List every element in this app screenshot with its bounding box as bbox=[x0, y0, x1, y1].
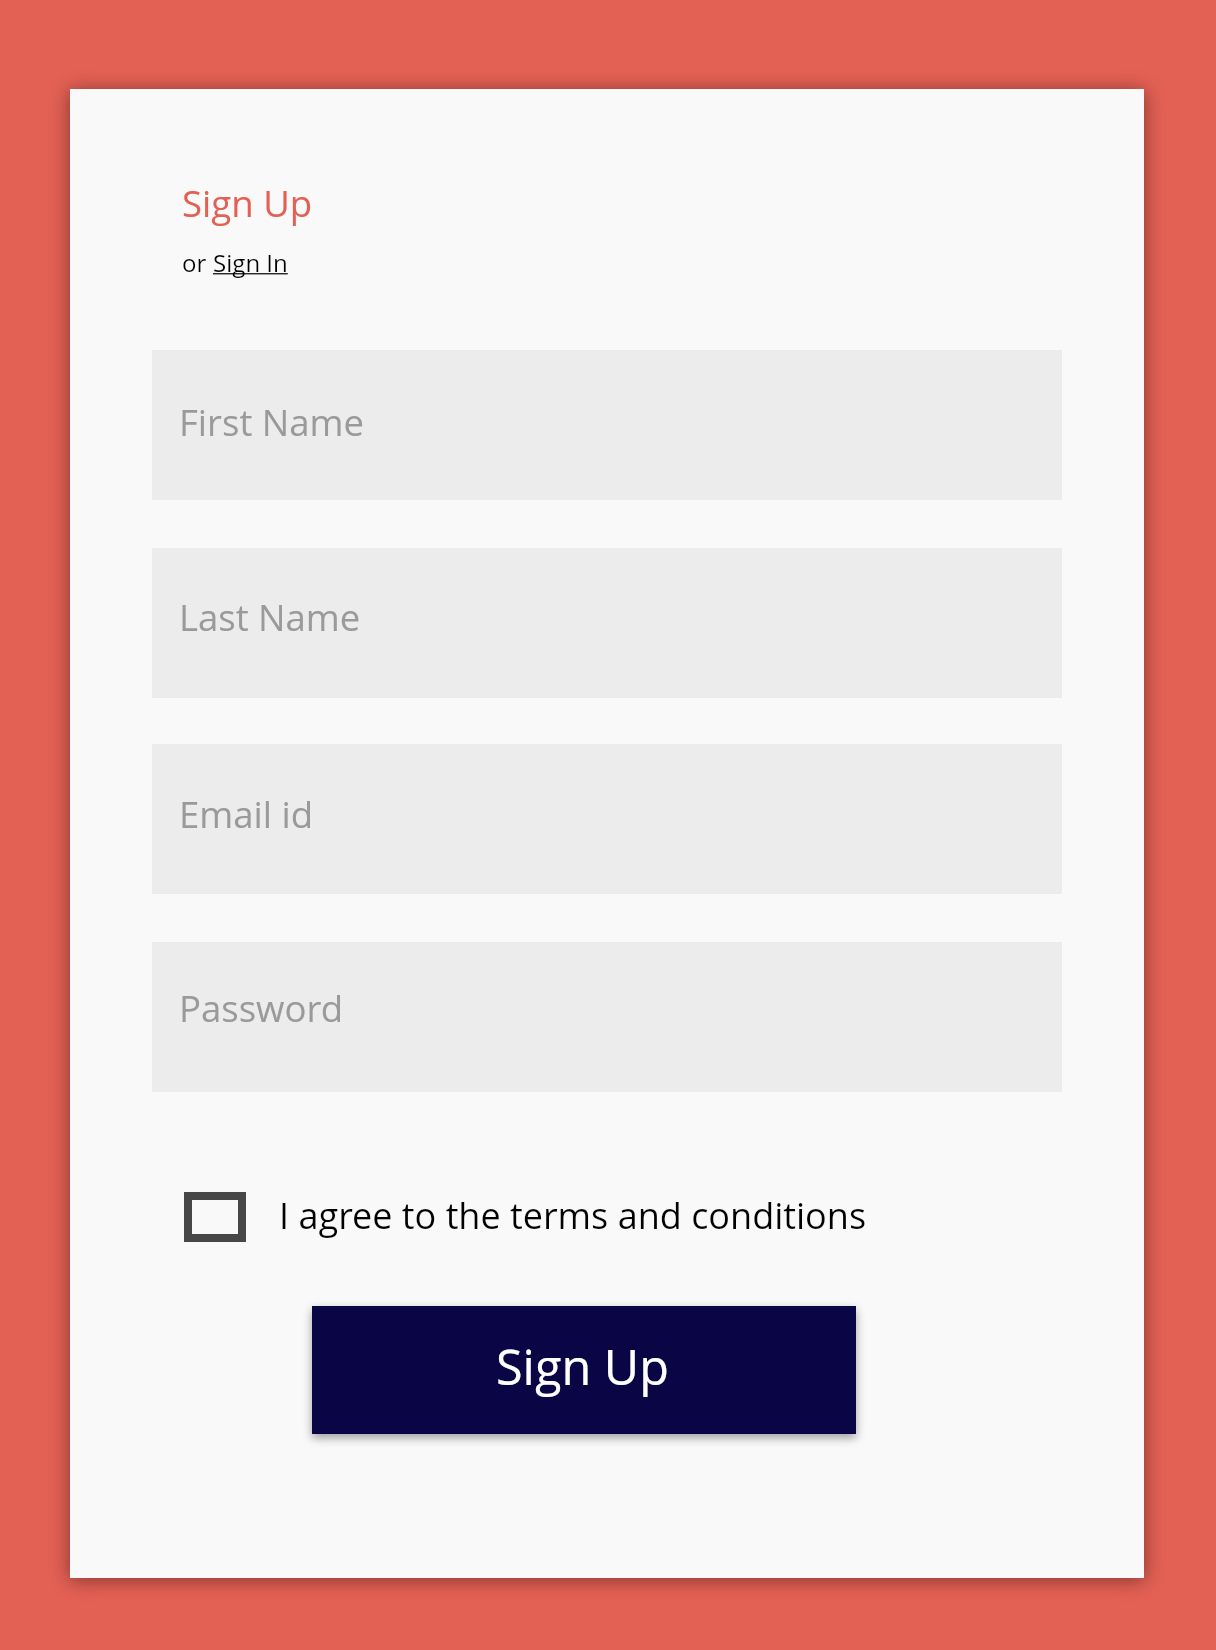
staticText: Last Name bbox=[179, 592, 361, 642]
staticText: First Name bbox=[179, 397, 364, 447]
staticText: Email id bbox=[179, 789, 314, 839]
button[interactable]: First Name bbox=[152, 350, 1062, 500]
staticText: Password bbox=[179, 983, 344, 1033]
button[interactable]: I agree to the terms and conditions chec… bbox=[184, 1183, 867, 1251]
staticText: I agree to the terms and conditions bbox=[279, 1191, 867, 1240]
staticText: Sign Up bbox=[182, 178, 313, 228]
staticText: or bbox=[182, 246, 213, 279]
button[interactable]: Sign In bbox=[213, 246, 288, 279]
other: I agree to the terms and conditions chec… bbox=[184, 1192, 246, 1242]
button[interactable]: Email id bbox=[152, 744, 1062, 894]
staticText: Sign Up bbox=[496, 1333, 669, 1399]
button[interactable]: Sign Up bbox=[312, 1306, 856, 1434]
button[interactable]: Last Name bbox=[152, 548, 1062, 698]
button[interactable]: Password bbox=[152, 942, 1062, 1092]
